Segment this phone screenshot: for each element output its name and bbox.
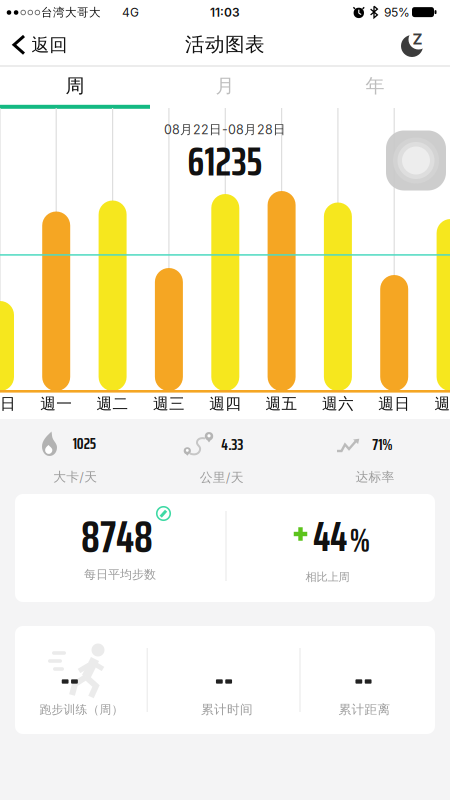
staticText: 71% bbox=[372, 432, 392, 457]
button[interactable]: 年 bbox=[300, 67, 450, 105]
staticText: 95% bbox=[384, 5, 410, 20]
staticText: 週日 bbox=[378, 394, 410, 414]
button[interactable] bbox=[386, 130, 446, 190]
staticText: 累计时间 bbox=[201, 702, 253, 717]
staticText: 相比上周 bbox=[306, 570, 350, 584]
staticText: 週一 bbox=[40, 394, 72, 414]
staticText: 每日平均步数 bbox=[84, 567, 156, 582]
staticText: 8748 bbox=[81, 502, 153, 572]
button[interactable]: 返回 bbox=[4, 28, 76, 62]
staticText: 活动图表 bbox=[185, 32, 265, 57]
staticText: 61235 bbox=[187, 130, 262, 193]
staticText: 达标率 bbox=[355, 469, 394, 485]
staticText: 週一 bbox=[435, 394, 450, 414]
staticText: % bbox=[349, 515, 370, 566]
staticText: 11:03 bbox=[210, 5, 240, 20]
staticText: 週五 bbox=[266, 394, 298, 414]
button[interactable]: 周 bbox=[0, 67, 150, 105]
staticText: Z bbox=[412, 30, 422, 48]
staticText: 週六 bbox=[322, 394, 354, 414]
staticText: 4.33 bbox=[221, 432, 243, 457]
staticText: 週四 bbox=[209, 394, 241, 414]
staticText: 月 bbox=[215, 74, 234, 98]
staticText: 跑步训练（周） bbox=[39, 702, 123, 717]
staticText: 週二 bbox=[97, 394, 129, 414]
button[interactable]: 月 bbox=[150, 67, 300, 105]
button[interactable]: Z bbox=[397, 29, 433, 63]
staticText: 1025 bbox=[73, 431, 96, 456]
staticText: 4G bbox=[122, 5, 139, 20]
button[interactable] bbox=[155, 505, 171, 521]
staticText: 週日 bbox=[0, 394, 16, 414]
staticText: 年 bbox=[365, 74, 384, 98]
staticText: 周 bbox=[65, 74, 84, 98]
staticText: 累计距离 bbox=[338, 702, 390, 717]
staticText: 公里/天 bbox=[200, 469, 244, 485]
staticText: 週三 bbox=[153, 394, 185, 414]
staticText: 08月22日-08月28日 bbox=[164, 122, 286, 137]
staticText: 返回 bbox=[31, 34, 67, 56]
staticText: 台湾大哥大 bbox=[41, 5, 101, 20]
staticText: 大卡/天 bbox=[53, 469, 97, 485]
staticText: 44 bbox=[313, 503, 347, 569]
